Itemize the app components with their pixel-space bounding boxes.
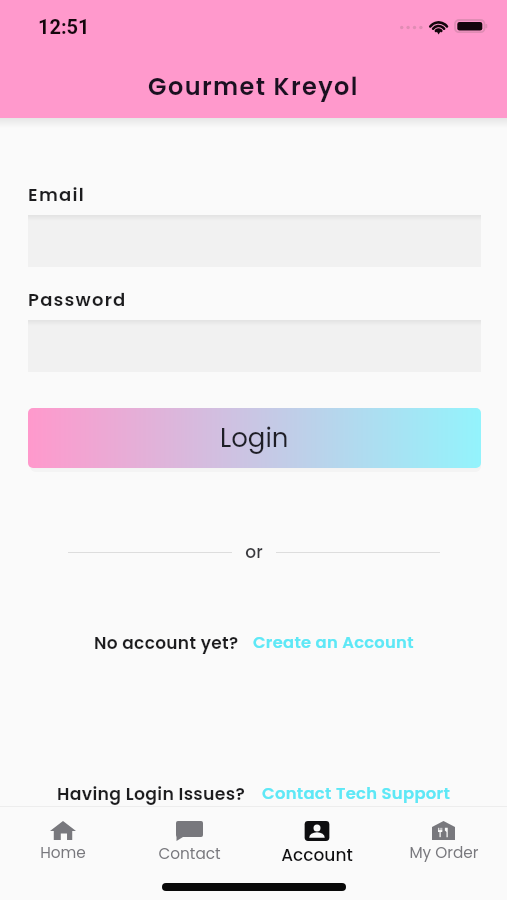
- staticText: 12:51: [38, 15, 90, 38]
- button[interactable]: Home: [0, 807, 126, 863]
- staticText: Contact: [158, 843, 221, 864]
- button[interactable]: Contact: [126, 807, 253, 864]
- button[interactable]: Login: [28, 408, 481, 468]
- staticText: or: [232, 540, 276, 564]
- button[interactable]: Contact Tech Support: [262, 782, 451, 805]
- staticText: No account yet?: [94, 631, 239, 655]
- staticText: Login: [220, 420, 289, 456]
- button[interactable]: My Order: [380, 807, 507, 863]
- button[interactable]: Account: [253, 807, 380, 867]
- staticText: Home: [40, 842, 86, 863]
- staticText: Gourmet Kreyol: [0, 70, 507, 104]
- staticText: Password: [28, 287, 127, 312]
- staticText: Having Login Issues?: [57, 782, 246, 806]
- button[interactable]: Create an Account: [253, 631, 414, 654]
- staticText: My Order: [409, 842, 479, 863]
- staticText: Account: [281, 843, 353, 867]
- staticText: Email: [28, 182, 86, 207]
